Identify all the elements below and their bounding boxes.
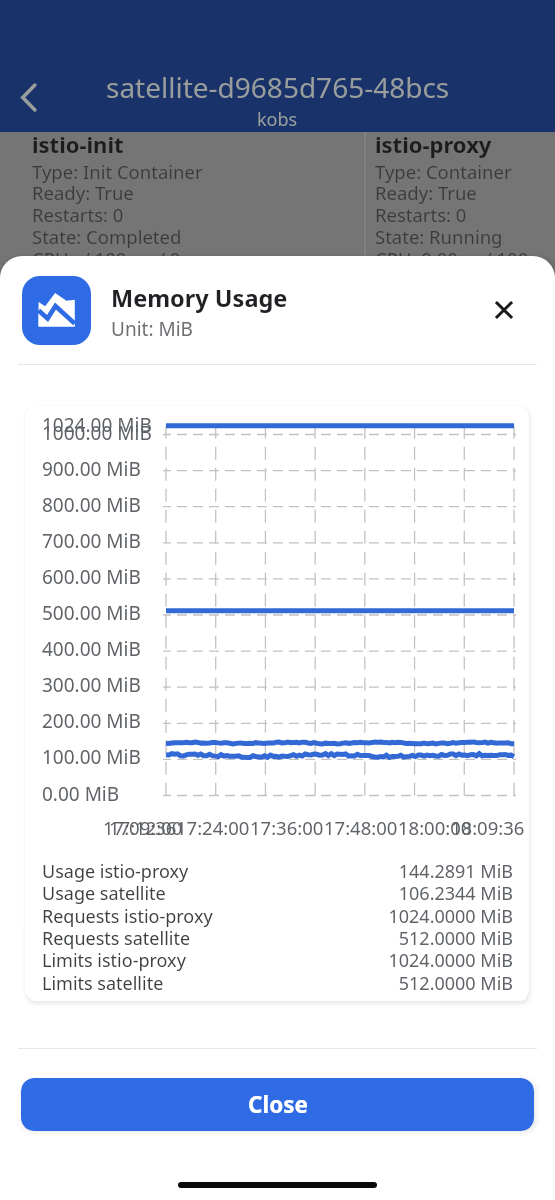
staticText: 600.00 MiB [42,564,141,590]
staticText: kobs [257,107,298,132]
staticText: Unit: MiB [111,316,193,342]
staticText: Usage istio-proxy [42,859,189,884]
staticText: Requests istio-proxy [42,904,213,929]
staticText: 0.00 MiB [42,781,120,807]
staticText: 17:36:00 [250,815,324,840]
staticText: 900.00 MiB [42,456,141,482]
staticText: 106.2344 MiB [42,881,513,906]
staticText: Type: Container Ready: True Restarts: 0 … [375,159,529,272]
button[interactable]: Back [5,73,53,121]
staticText: Usage satellite [42,881,166,906]
staticText: 200.00 MiB [42,708,141,734]
staticText: 700.00 MiB [42,528,141,554]
staticText: 512.0000 MiB [42,926,513,951]
staticText: 144.2891 MiB [42,859,513,884]
staticText: 1024.0000 MiB [42,904,513,929]
staticText: satellite-d9685d765-48bcs [106,68,450,106]
staticText: 17:09:36 [103,815,177,840]
staticText: istio-proxy [375,129,492,159]
staticText: 100.00 MiB [42,744,141,770]
staticText: 400.00 MiB [42,636,141,662]
staticText: 512.0000 MiB [42,971,513,996]
staticText: Requests satellite [42,926,191,951]
staticText: Memory Usage [111,282,288,314]
button[interactable]: Close [21,1078,534,1131]
button[interactable]: Close dialog [484,290,524,330]
staticText: 500.00 MiB [42,600,141,626]
staticText: Close [248,1089,308,1120]
staticText: 17:24:00 [176,815,250,840]
staticText: istio-init [32,129,124,159]
staticText: 1024.00 MiB [42,412,152,438]
staticText: Limits satellite [42,971,164,996]
staticText: 800.00 MiB [42,492,141,518]
staticText: 18:09:36 [451,815,525,840]
staticText: Type: Init Container Ready: True Restart… [32,159,203,272]
staticText: 17:12:00 [109,815,183,840]
staticText: 1024.0000 MiB [42,948,513,973]
staticText: Limits istio-proxy [42,948,186,973]
staticText: 17:48:00 [324,815,398,840]
staticText: 1000.00 MiB [42,420,152,446]
staticText: 300.00 MiB [42,672,141,698]
staticText: 18:00:00 [398,815,472,840]
